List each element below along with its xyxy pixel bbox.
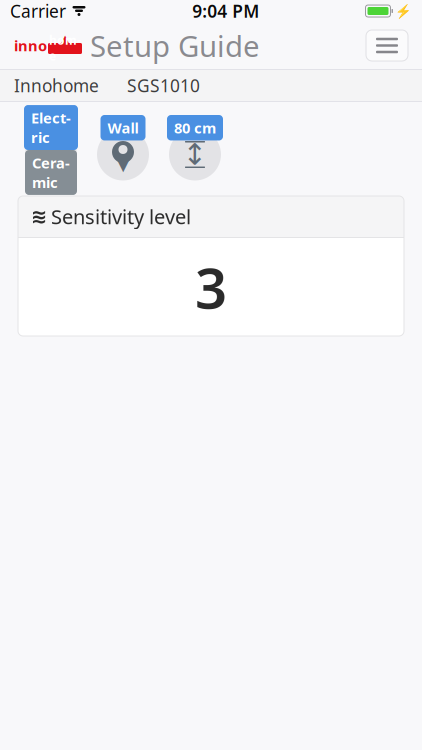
button[interactable]: 80 cm (166, 113, 224, 187)
staticText: ≋ (30, 205, 47, 228)
staticText: ▲ (59, 32, 70, 48)
staticText: ↕ (182, 138, 207, 171)
staticText: Electric (31, 108, 71, 147)
staticText: home (49, 32, 81, 64)
button[interactable]: Wall (94, 113, 152, 187)
button[interactable]: Electric (22, 113, 80, 187)
staticText: inno (14, 36, 47, 55)
staticText: SGS1010 (127, 74, 200, 97)
staticText: Innohome (14, 74, 99, 97)
staticText: 3 (195, 250, 227, 324)
staticText: ⚡ (26, 132, 76, 177)
button[interactable]: Innohome (14, 68, 99, 103)
button[interactable]: Menu (366, 30, 408, 61)
staticText: ▼ (116, 153, 130, 174)
staticText: 9:04 PM (192, 0, 259, 22)
staticText: Sensitivity level (51, 203, 191, 230)
staticText: 80 cm (174, 118, 216, 137)
staticText: Carrier (10, 0, 66, 22)
button[interactable]: SGS1010 (99, 68, 200, 103)
staticText: Wall (107, 118, 138, 137)
staticText: Ceramic (32, 153, 70, 192)
staticText: ⚡ (395, 3, 412, 19)
staticText: Setup Guide (90, 26, 260, 65)
